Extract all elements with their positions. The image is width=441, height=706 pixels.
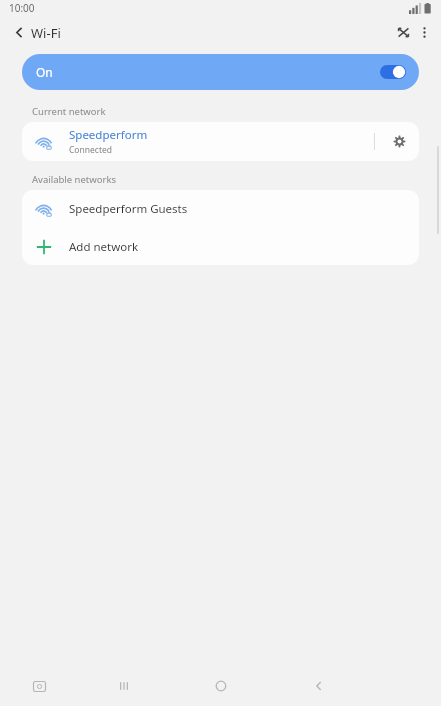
staticText: Add network bbox=[69, 239, 139, 255]
staticText: 10:00 bbox=[9, 1, 35, 15]
button[interactable]: Network settings bbox=[374, 122, 418, 161]
button[interactable]: Scan bbox=[390, 19, 416, 45]
button[interactable]: More options bbox=[411, 19, 437, 45]
staticText: Wi-Fi bbox=[31, 24, 61, 42]
button[interactable]: Back bbox=[300, 673, 338, 699]
button[interactable]: Speedperform Guests bbox=[22, 190, 419, 228]
button[interactable]: Speedperform bbox=[22, 122, 419, 161]
button[interactable]: On bbox=[22, 54, 419, 90]
button[interactable]: Screenshot bbox=[20, 673, 58, 699]
staticText: Speedperform bbox=[69, 127, 148, 143]
staticText: Connected bbox=[69, 144, 112, 156]
staticText: Available networks bbox=[32, 173, 116, 186]
button[interactable]: Back bbox=[6, 19, 32, 45]
button[interactable]: Home bbox=[202, 673, 240, 699]
staticText: Speedperform Guests bbox=[69, 201, 188, 217]
button[interactable]: Add network bbox=[22, 228, 419, 265]
button[interactable]: Recent apps bbox=[105, 673, 143, 699]
staticText: Current network bbox=[32, 105, 106, 118]
staticText: On bbox=[36, 64, 53, 80]
